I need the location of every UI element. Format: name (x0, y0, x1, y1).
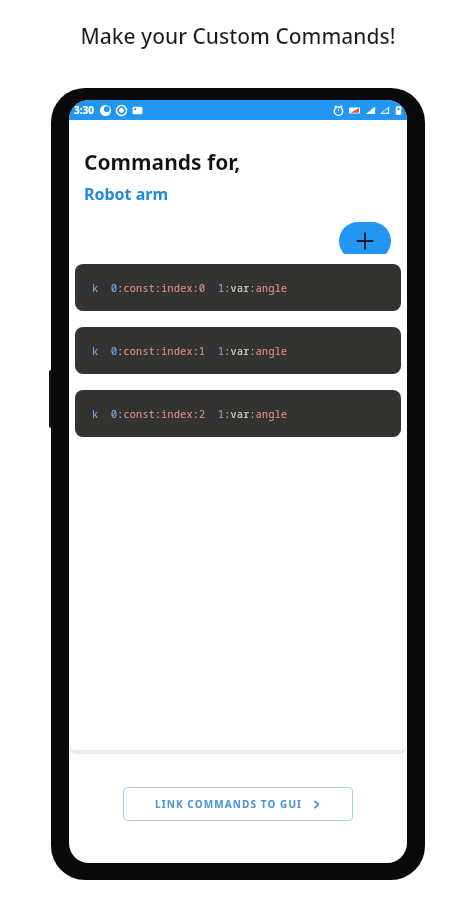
button[interactable]: k 0:const:index:2 1:var:angle (75, 390, 401, 437)
staticText: Robot arm (84, 183, 169, 205)
staticText: Commands for, (84, 148, 241, 177)
button[interactable]: k 0:const:index:1 1:var:angle (75, 327, 401, 374)
staticText: k 0:const:index:2 1:var:angle (92, 407, 288, 421)
button[interactable]: LINK COMMANDS TO GUI (123, 787, 353, 821)
staticText: k 0:const:index:1 1:var:angle (92, 344, 288, 358)
staticText: Make your Custom Commands! (0, 22, 476, 51)
staticText: k 0:const:index:0 1:var:angle (92, 281, 288, 295)
staticText: LINK COMMANDS TO GUI (155, 797, 303, 811)
button[interactable]: Add command (339, 222, 391, 260)
staticText: 3:30 (74, 103, 94, 117)
button[interactable]: k 0:const:index:0 1:var:angle (75, 264, 401, 311)
